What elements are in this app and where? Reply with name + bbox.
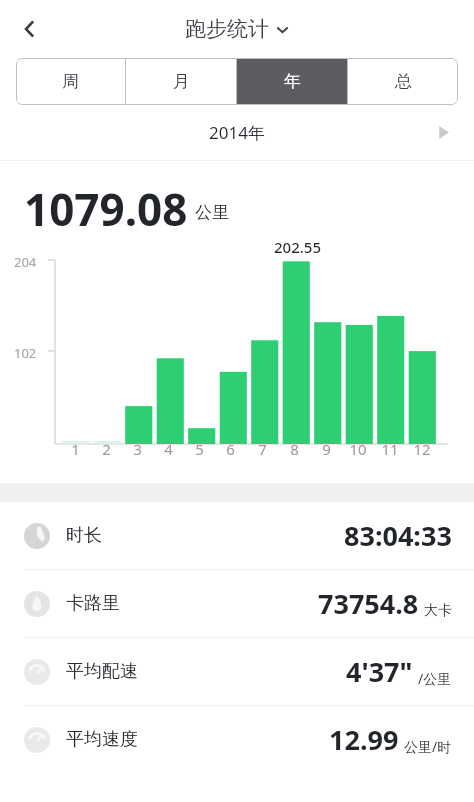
staticText: 1079.08 (24, 179, 188, 227)
staticText: 3 (133, 439, 142, 459)
staticText: 12.99 (329, 721, 399, 758)
button[interactable]: 总 (348, 58, 458, 105)
staticText: 跑步统计 (185, 16, 269, 42)
staticText: 月 (173, 71, 190, 92)
staticText: 2014年 (209, 121, 265, 144)
staticText: 平均速度 (66, 728, 138, 751)
button[interactable]: 平均速度 (0, 706, 474, 773)
staticText: 4 (164, 439, 173, 459)
button[interactable]: 平均配速 (0, 638, 474, 705)
staticText: 102 (14, 344, 37, 362)
staticText: 时长 (66, 524, 102, 547)
staticText: 公里 (195, 202, 229, 223)
button[interactable]: 2014年 (0, 105, 474, 160)
staticText: 5 (195, 439, 204, 459)
button[interactable]: 卡路里 (0, 570, 474, 637)
staticText: 4'37" (346, 653, 413, 690)
staticText: 11 (381, 439, 399, 459)
button[interactable]: Back (8, 7, 52, 51)
staticText: 83:04:33 (344, 517, 452, 554)
staticText: 7 (258, 439, 267, 459)
staticText: 9 (322, 439, 331, 459)
button[interactable]: 年 (237, 58, 347, 105)
staticText: 公里/时 (404, 737, 452, 756)
staticText: 12 (413, 439, 431, 459)
staticText: 1 (71, 439, 80, 459)
staticText: 卡路里 (66, 592, 120, 615)
staticText: /公里 (418, 669, 452, 688)
staticText: 10 (349, 439, 367, 459)
staticText: 总 (395, 71, 412, 92)
staticText: 年 (284, 71, 301, 92)
staticText: 周 (62, 71, 79, 92)
staticText: 大卡 (424, 602, 452, 620)
staticText: 204 (14, 253, 37, 271)
staticText: 8 (290, 439, 299, 459)
button[interactable]: 月 (126, 58, 236, 105)
staticText: 73754.8 (318, 585, 419, 622)
button[interactable]: 跑步统计 (185, 16, 289, 42)
button[interactable]: 周 (16, 58, 125, 105)
button[interactable]: 时长 (0, 502, 474, 569)
staticText: 202.55 (274, 237, 321, 257)
staticText: 平均配速 (66, 660, 138, 683)
staticText: 2 (102, 439, 111, 459)
staticText: 6 (226, 439, 235, 459)
